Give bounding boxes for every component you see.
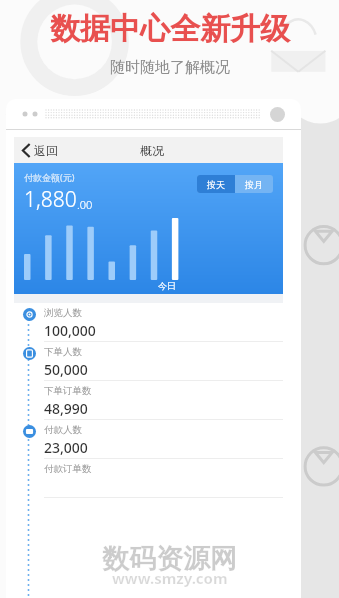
staticText: .00 [77,197,93,212]
button[interactable]: 付款人数 [14,420,283,459]
staticText: www.smzy.com [112,568,228,588]
staticText: 付款金额(元) [24,171,75,183]
staticText: 按天 [207,179,225,190]
staticText: 返回 [34,143,58,158]
staticText: 按月 [245,179,263,190]
staticText: 浏览人数 [44,307,82,319]
staticText: 付款人数 [44,424,82,436]
button[interactable]: 返回 [14,137,66,163]
button[interactable]: 浏览人数 [14,303,283,342]
staticText: 数据中心全新升级 [50,10,290,48]
button[interactable]: 下单订单数 [14,381,283,420]
staticText: 48,990 [44,399,88,418]
staticText: 1,880 [24,185,77,214]
staticText: 下单人数 [44,346,82,358]
other: 下单人数 [23,347,36,360]
staticText: 概况 [140,143,164,158]
staticText: 随时随地了解概况 [110,58,230,77]
staticText: 数码资源网 [102,542,237,576]
staticText: 下单订单数 [44,385,92,397]
staticText: 100,000 [44,321,96,340]
button[interactable]: 按天 [197,175,235,193]
button[interactable]: 按月 [235,175,273,193]
staticText: 50,000 [44,360,88,379]
button[interactable]: 付款订单数 [14,459,283,498]
button[interactable]: 下单人数 [14,342,283,381]
staticText: 付款订单数 [44,463,92,475]
staticText: 今日 [158,280,176,291]
staticText: 23,000 [44,438,88,457]
other: 浏览人数 [23,308,36,321]
other: 付款人数 [23,425,36,438]
